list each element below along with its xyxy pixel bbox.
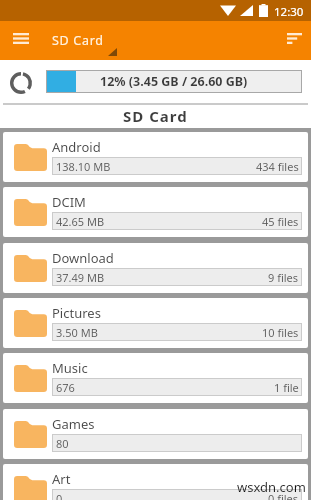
staticText: 42.65 MB (56, 214, 105, 229)
button[interactable]: Games (3, 409, 308, 459)
button[interactable]: DCIM (3, 187, 308, 237)
staticText: 45 files (262, 214, 299, 229)
staticText: 80 (56, 436, 69, 451)
staticText: Download (52, 249, 114, 267)
button[interactable]: Pictures (3, 298, 308, 348)
button[interactable]: Download (3, 243, 308, 293)
staticText: 434 files (256, 159, 299, 174)
staticText: 0 (56, 491, 63, 500)
staticText: Pictures (52, 304, 101, 322)
button[interactable]: Android (3, 132, 308, 182)
staticText: Android (52, 138, 101, 156)
staticText: 10 files (262, 325, 299, 340)
staticText: SD Card (123, 106, 188, 126)
staticText: 1 file (274, 380, 299, 395)
staticText: wsxdn.com (237, 478, 306, 496)
staticText: 676 (56, 380, 75, 395)
staticText: 12% (3.45 GB / 26.60 GB) (100, 73, 248, 90)
staticText: 37.49 MB (56, 270, 105, 285)
staticText: 9 files (268, 270, 299, 285)
staticText: 0 files (268, 491, 299, 500)
button[interactable]: Refresh (4, 66, 38, 100)
staticText: Games (52, 415, 95, 433)
staticText: 12:30 (274, 4, 304, 20)
staticText: Music (52, 359, 88, 377)
button[interactable]: Art (3, 464, 308, 500)
staticText: SD Card (52, 32, 104, 49)
staticText: 138.10 MB (56, 159, 111, 174)
button[interactable]: Sort (278, 22, 310, 54)
button[interactable]: Music (3, 353, 308, 403)
button[interactable]: SD Card (44, 26, 114, 55)
staticText: Art (52, 470, 71, 488)
button[interactable]: Open navigation drawer (5, 22, 37, 54)
staticText: 3.50 MB (56, 325, 98, 340)
staticText: DCIM (52, 193, 86, 211)
